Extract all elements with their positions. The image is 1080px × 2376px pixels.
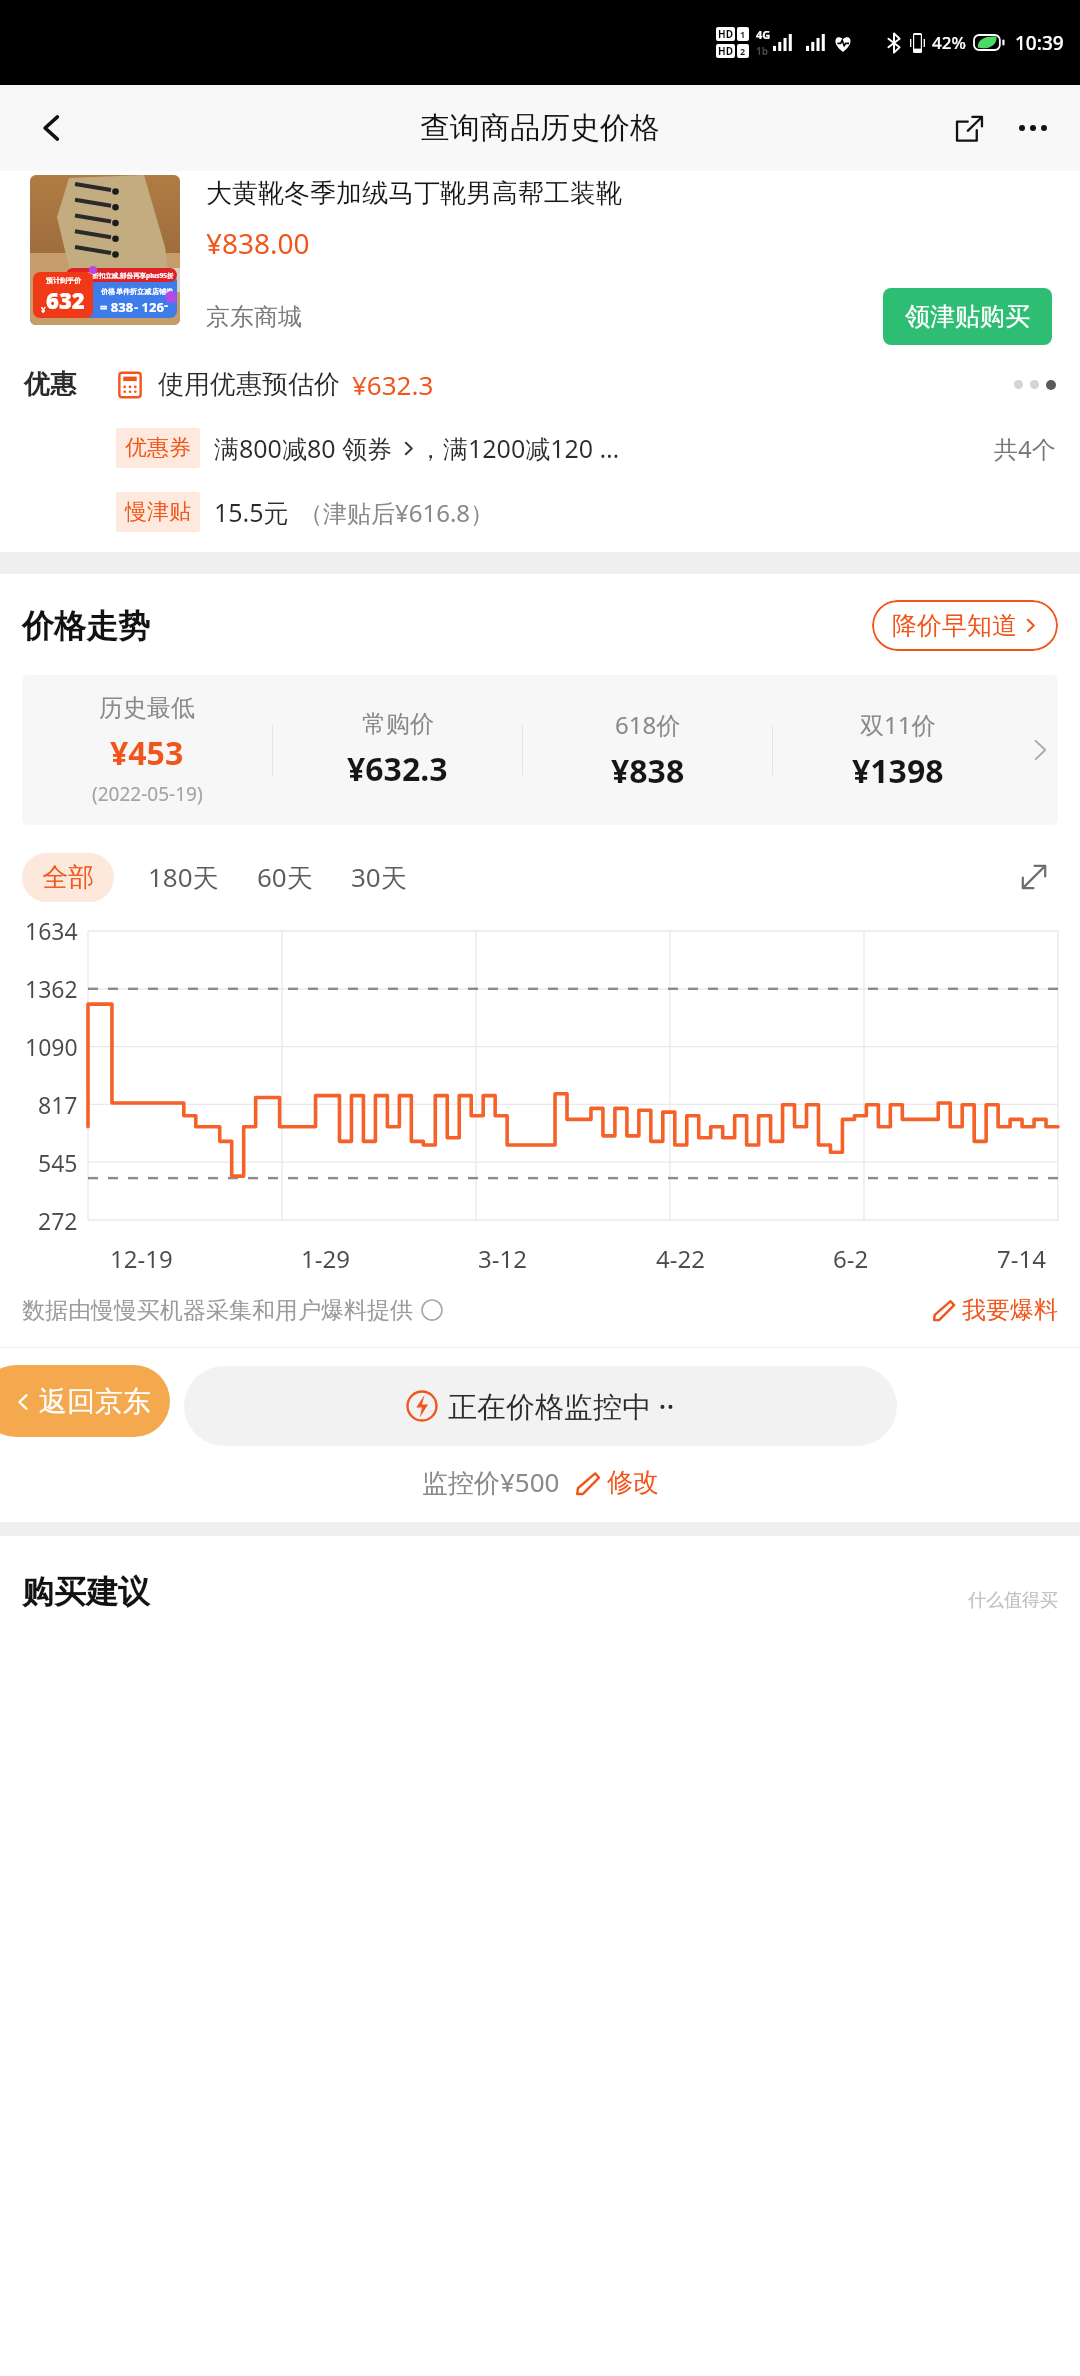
staticText: ¥838.00 [206, 224, 310, 262]
staticText: 42% [932, 31, 966, 54]
staticText: 7-14 [997, 1242, 1046, 1275]
staticText: 15.5元 [214, 495, 289, 529]
button[interactable]: 领津贴购买 [883, 288, 1052, 345]
button[interactable]: 历史最低 [22, 675, 1058, 825]
staticText: 京东商城 [206, 302, 302, 332]
staticText: 1090 [25, 1031, 78, 1062]
staticText: 1 [740, 28, 746, 40]
button[interactable]: 180天 [136, 851, 231, 903]
staticText: 30天 [351, 859, 407, 895]
button[interactable]: 正在价格监控中 ·· [184, 1366, 897, 1446]
staticText: 价格走势 [22, 606, 150, 646]
staticText: 4-22 [656, 1242, 705, 1275]
staticText: ¥632.3 [347, 747, 448, 791]
staticText: 817 [38, 1089, 78, 1120]
staticText: 预计到手价 [46, 276, 81, 285]
staticText: 优惠券 [125, 434, 191, 462]
staticText: 6-2 [833, 1242, 869, 1275]
staticText: 价格 [101, 287, 115, 296]
staticText: 共4个 [994, 432, 1056, 465]
staticText: 正在价格监控中 ·· [448, 1386, 675, 1426]
staticText: ¥ [41, 304, 46, 315]
button[interactable]: 价格 [0, 171, 1080, 367]
staticText: 降价早知道 [892, 610, 1017, 641]
staticText: 常购价 [362, 709, 434, 739]
button[interactable]: 30天 [339, 851, 419, 903]
staticText: 3-12 [478, 1242, 527, 1275]
staticText: 272 [38, 1205, 78, 1236]
staticText: 历史最低 [99, 693, 195, 723]
button[interactable]: 我要爆料 [933, 1295, 1058, 1325]
staticText: 632 [46, 285, 85, 315]
button[interactable]: 全部 [22, 853, 114, 902]
staticText: 监控价¥500 [422, 1464, 560, 1500]
button[interactable]: 返回京东 [0, 1365, 170, 1437]
staticText: 返回京东 [39, 1384, 151, 1419]
button[interactable]: 降价早知道 [872, 600, 1058, 651]
button[interactable]: Back [22, 98, 82, 158]
staticText: 修改 [607, 1466, 659, 1499]
staticText: 优惠 [24, 368, 110, 401]
staticText: 什么值得买 [968, 1589, 1058, 1612]
staticText: 购买建议 [22, 1572, 150, 1612]
button[interactable]: 优惠券 [24, 428, 1056, 468]
staticText: 领津贴购买 [905, 301, 1030, 332]
button[interactable]: More options [1006, 101, 1060, 155]
button[interactable]: 60天 [245, 851, 325, 903]
button[interactable]: 慢津贴 [24, 492, 1056, 532]
staticText: 双11价 [860, 708, 936, 741]
staticText: 我要爆料 [962, 1295, 1058, 1325]
staticText: 店铺券 [152, 287, 173, 296]
staticText: 1634 [25, 915, 78, 946]
staticText: 12-19 [110, 1242, 173, 1275]
staticText: 1件即享折扣立减,部份再享plus95折 [69, 271, 174, 280]
staticText: 使用优惠预估价 [158, 368, 340, 401]
button[interactable]: Expand chart [1010, 853, 1058, 901]
staticText: HD [718, 27, 733, 41]
staticText: 1b [756, 44, 769, 58]
staticText: ，满1200减120 … [418, 431, 620, 465]
button[interactable]: Share [942, 101, 996, 155]
staticText: 慢津贴 [125, 498, 191, 526]
staticText: 2 [740, 45, 746, 57]
staticText: 180天 [148, 859, 219, 895]
staticText: 数据由慢慢买机器采集和用户爆料提供 [22, 1296, 413, 1325]
staticText: 单件折立减 [116, 287, 151, 296]
staticText: 1362 [25, 973, 78, 1004]
staticText: - 80 [164, 296, 174, 318]
staticText: (2022-05-19) [92, 781, 203, 807]
staticText: 1-29 [301, 1242, 350, 1275]
staticText: ¥1398 [852, 749, 944, 793]
staticText: 满800减80 领券 [214, 431, 393, 465]
staticText: - 126 [134, 298, 164, 316]
staticText: HD [718, 44, 733, 58]
staticText: 60天 [257, 859, 313, 895]
staticText: 4G [756, 27, 771, 42]
button[interactable]: 优惠 [24, 367, 1056, 402]
staticText: 618价 [615, 708, 681, 741]
staticText: 10:39 [1015, 30, 1064, 56]
staticText: 大黄靴冬季加绒马丁靴男高帮工装靴 [206, 177, 622, 210]
staticText: ¥453 [110, 731, 184, 775]
staticText: = 838 [100, 298, 134, 316]
staticText: 545 [38, 1147, 78, 1178]
staticText: ¥838 [611, 749, 685, 793]
staticText: （津贴后¥616.8） [299, 496, 495, 529]
button[interactable]: 修改 [576, 1466, 659, 1499]
staticText: ¥632.3 [352, 367, 434, 402]
staticText: 查询商品历史价格 [420, 109, 660, 147]
staticText: 全部 [42, 861, 94, 894]
